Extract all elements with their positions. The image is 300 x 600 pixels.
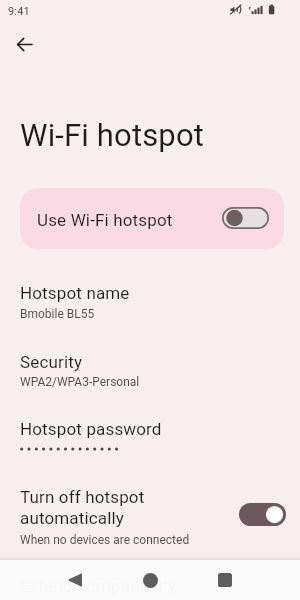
button[interactable]: Back: [8, 28, 41, 61]
staticText: WPA2/WPA3-Personal: [20, 375, 140, 389]
staticText: 9:41: [8, 5, 30, 18]
button[interactable]: Extend compatibility: [20, 576, 177, 596]
staticText: Extend compatibility: [20, 576, 177, 596]
button[interactable]: Hotspot name: [20, 283, 283, 321]
staticText: Wi-Fi hotspot: [20, 118, 205, 154]
staticText: When no devices are connected: [20, 533, 190, 547]
staticText: Turn off hotspot: [20, 487, 145, 507]
button[interactable]: Use Wi-Fi hotspot: [20, 188, 284, 249]
button[interactable]: Home: [130, 560, 170, 600]
staticText: Hotspot password: [20, 419, 162, 439]
button[interactable]: Security: [20, 352, 283, 389]
staticText: Hotspot name: [20, 283, 130, 303]
staticText: Security: [20, 352, 83, 372]
button[interactable]: Use Wi-Fi hotspot toggle, off: [222, 207, 269, 229]
staticText: automatically: [20, 508, 124, 528]
button[interactable]: Turn off hotspot automatically toggle, o…: [239, 503, 286, 526]
button[interactable]: Back: [55, 560, 95, 600]
button[interactable]: Recent apps: [205, 560, 245, 600]
staticText: Use Wi-Fi hotspot: [37, 210, 173, 230]
staticText: Bmobile BL55: [20, 307, 95, 321]
button[interactable]: Hotspot password: [20, 419, 283, 453]
button[interactable]: Turn off hotspot: [20, 487, 286, 547]
